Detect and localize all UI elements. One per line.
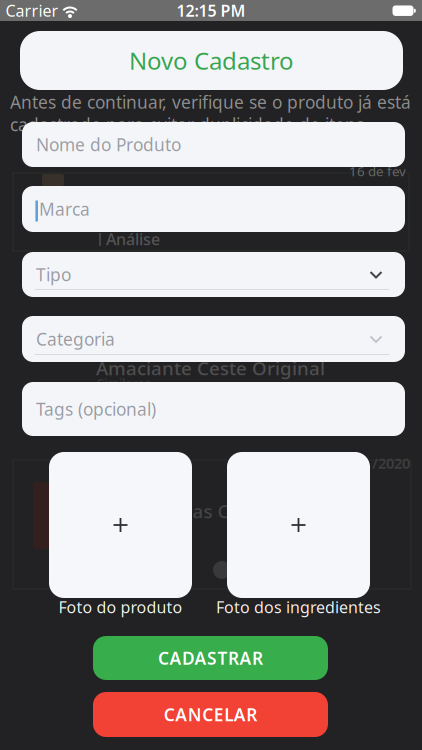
button[interactable]: Adicionar foto dos ingredientes bbox=[227, 452, 370, 598]
staticText: Carrier bbox=[5, 0, 58, 21]
staticText: 12:15 PM bbox=[176, 0, 245, 21]
staticText: Tags (opcional) bbox=[36, 397, 156, 420]
staticText: Marca bbox=[39, 197, 90, 220]
staticText: Foto do produto bbox=[58, 596, 182, 618]
button[interactable]: Categoria bbox=[22, 316, 405, 362]
staticText: /2020 bbox=[372, 453, 410, 473]
staticText: Similares bbox=[97, 374, 151, 392]
button[interactable]: Adicionar foto do produto bbox=[49, 452, 192, 598]
staticText: as C bbox=[192, 499, 229, 523]
staticText: Análise bbox=[106, 228, 160, 250]
staticText: Antes de continuar, verifique se o produ… bbox=[10, 90, 411, 113]
staticText: Categoria bbox=[36, 327, 115, 350]
button[interactable]: CANCELAR bbox=[93, 692, 328, 737]
staticText: Nome do Produto bbox=[36, 133, 181, 156]
staticText: Tipo bbox=[36, 263, 71, 286]
staticText: Novo Cadastro bbox=[129, 45, 294, 76]
staticText: Amaciante Ceste Original bbox=[96, 356, 325, 380]
staticText: CADASTRAR bbox=[158, 646, 263, 669]
button[interactable]: CADASTRAR bbox=[93, 636, 328, 680]
staticText: CANCELAR bbox=[164, 703, 257, 726]
button[interactable]: Tipo bbox=[22, 252, 405, 297]
staticText: cadastrado para evitar duplicidade de it… bbox=[10, 113, 369, 136]
staticText: Foto dos ingredientes bbox=[216, 596, 381, 618]
staticText: 16 de fev bbox=[349, 162, 406, 180]
